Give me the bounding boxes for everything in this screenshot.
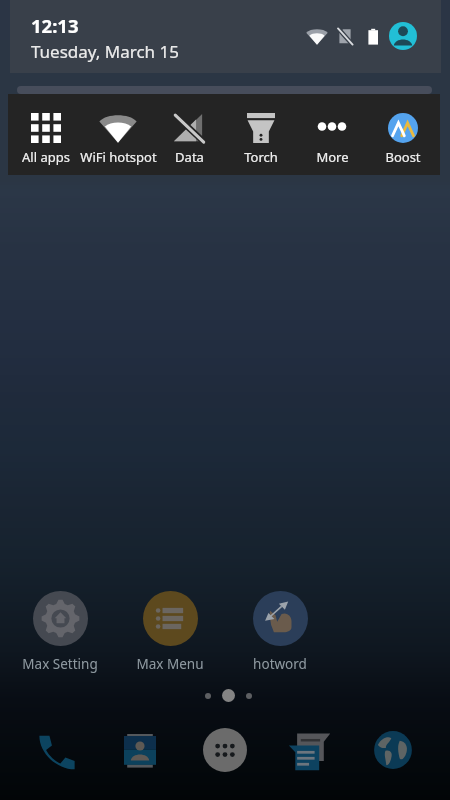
staticText: Max Setting	[22, 655, 98, 673]
staticText: Max Menu	[136, 655, 204, 673]
staticText: hotword	[253, 655, 307, 673]
staticText: Torch	[244, 148, 278, 166]
button[interactable]: Max Setting	[5, 590, 115, 673]
staticText: All apps	[22, 148, 70, 166]
button[interactable]: Boost	[363, 94, 443, 175]
staticText: More	[316, 148, 349, 166]
button[interactable]: hotword	[225, 590, 335, 673]
staticText: Tuesday, March 15	[31, 40, 179, 63]
button[interactable]: Phone	[31, 724, 83, 776]
button[interactable]: Browser	[367, 724, 419, 776]
staticText: Boost	[385, 148, 421, 166]
button[interactable]: More	[292, 94, 372, 175]
staticText: 12:13	[31, 13, 79, 38]
button[interactable]: Data	[149, 94, 229, 175]
button[interactable]: Messages	[284, 724, 336, 776]
button[interactable]: Contacts	[114, 724, 166, 776]
button[interactable]: All apps	[6, 94, 86, 175]
button[interactable]: All apps	[199, 724, 251, 776]
staticText: Data	[175, 148, 204, 166]
button[interactable]: Account	[389, 22, 417, 50]
staticText: WiFi hotspot	[80, 148, 157, 166]
button[interactable]: WiFi hotspot	[78, 94, 158, 175]
button[interactable]: Max Menu	[115, 590, 225, 673]
button[interactable]: Torch	[221, 94, 301, 175]
